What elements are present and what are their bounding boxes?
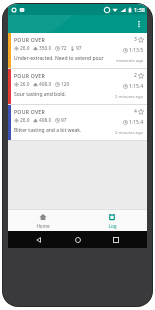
staticText: moments ago [116, 58, 144, 64]
staticText: 26.0 [20, 45, 30, 52]
staticText: POUR OVER [14, 72, 45, 79]
button[interactable]: POUR OVER [8, 69, 147, 104]
staticText: 3 [134, 36, 137, 43]
staticText: 26.0 [20, 117, 30, 124]
staticText: 97 [61, 117, 67, 124]
button[interactable]: Home [8, 209, 77, 231]
button[interactable]: POUR OVER [8, 33, 147, 68]
staticText: 408.0 [39, 81, 52, 88]
button[interactable]: Recent apps [109, 233, 123, 247]
staticText: 2 minutes ago [115, 130, 144, 136]
staticText: Sour tasting and bold. [14, 91, 66, 98]
staticText: 408.0 [39, 117, 52, 124]
staticText: Home [36, 223, 50, 229]
button[interactable]: Log [77, 209, 147, 231]
button[interactable]: Home [71, 233, 85, 247]
staticText: Bitter tasting and a bit weak. [14, 127, 82, 134]
button[interactable]: More options [131, 16, 147, 32]
staticText: 1:13.5 [129, 47, 144, 54]
staticText: Log [108, 223, 117, 229]
staticText: 2 [134, 72, 137, 79]
button[interactable]: Back [32, 233, 46, 247]
staticText: Under-extracted. Need to extend pour tim… [14, 55, 111, 62]
button[interactable]: POUR OVER [8, 105, 147, 140]
staticText: 1:15.4 [129, 119, 144, 126]
staticText: POUR OVER [14, 36, 45, 43]
staticText: POUR OVER [14, 108, 45, 115]
staticText: 1:38 [134, 6, 145, 13]
staticText: 72 [61, 45, 67, 52]
staticText: 4 [134, 108, 137, 115]
staticText: 97 [76, 45, 82, 52]
staticText: 2 minutes ago [115, 94, 144, 100]
staticText: 120 [61, 81, 70, 88]
staticText: 26.0 [20, 81, 30, 88]
staticText: 350.0 [39, 45, 52, 52]
staticText: 1:15.4 [129, 83, 144, 90]
